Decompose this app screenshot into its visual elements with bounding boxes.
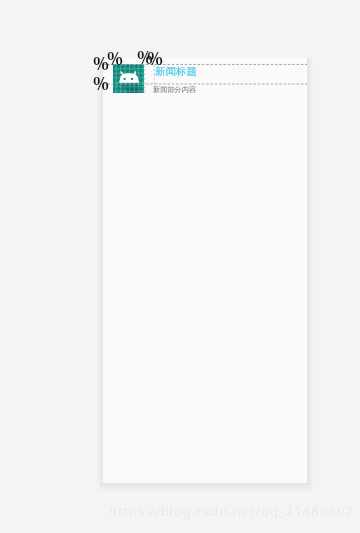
staticText: %: [107, 46, 123, 70]
staticText: 新闻标题: [155, 65, 197, 78]
staticText: %: [93, 71, 109, 95]
staticText: %: [137, 45, 153, 69]
staticText: %: [93, 51, 109, 75]
button[interactable]: App icon: [103, 58, 307, 93]
other: App icon: [113, 64, 144, 93]
staticText: 新闻部分内容: [153, 85, 197, 94]
staticText: %: [147, 46, 163, 70]
staticText: https://blog.csdn.net/qq_21480607: [109, 502, 355, 520]
